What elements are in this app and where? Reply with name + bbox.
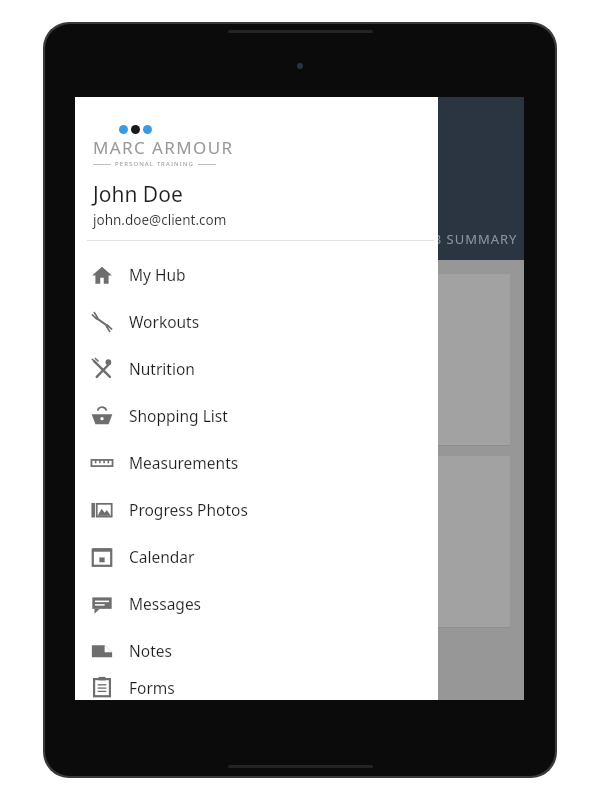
staticText: Shopping List xyxy=(129,405,228,426)
staticText: Notes xyxy=(129,640,172,661)
staticText: Workouts xyxy=(129,311,200,332)
button[interactable]: Social link xyxy=(143,125,152,134)
button[interactable]: Social link xyxy=(131,125,140,134)
staticText: Nutrition xyxy=(129,358,195,379)
staticText: PERSONAL TRAINING xyxy=(115,160,194,168)
button[interactable]: Nutrition xyxy=(75,345,438,392)
staticText: Calendar xyxy=(129,546,195,567)
button[interactable]: Progress Photos xyxy=(75,486,438,533)
staticText: Messages xyxy=(129,593,202,614)
staticText: John Doe xyxy=(93,180,183,209)
staticText: john.doe@client.com xyxy=(93,211,227,229)
staticText: MY HUB SUMMARY xyxy=(386,230,518,248)
button[interactable]: Social link xyxy=(119,125,128,134)
button[interactable]: NUTRITION xyxy=(89,274,510,446)
staticText: MARC ARMOUR xyxy=(93,136,234,159)
button[interactable]: Calendar xyxy=(75,533,438,580)
button[interactable]: My Hub xyxy=(75,251,438,298)
button[interactable]: Notes xyxy=(75,627,438,674)
staticText: Forms xyxy=(129,677,175,698)
staticText: Progress Photos xyxy=(129,499,248,520)
staticText: My Hub xyxy=(129,264,186,285)
button[interactable]: Measurements xyxy=(75,439,438,486)
staticText: Measurements xyxy=(129,452,239,473)
button[interactable]: MEASUREMENTS xyxy=(89,456,510,628)
button[interactable]: Messages xyxy=(75,580,438,627)
button[interactable]: Shopping List xyxy=(75,392,438,439)
button[interactable]: Forms xyxy=(75,674,438,700)
button[interactable]: Workouts xyxy=(75,298,438,345)
